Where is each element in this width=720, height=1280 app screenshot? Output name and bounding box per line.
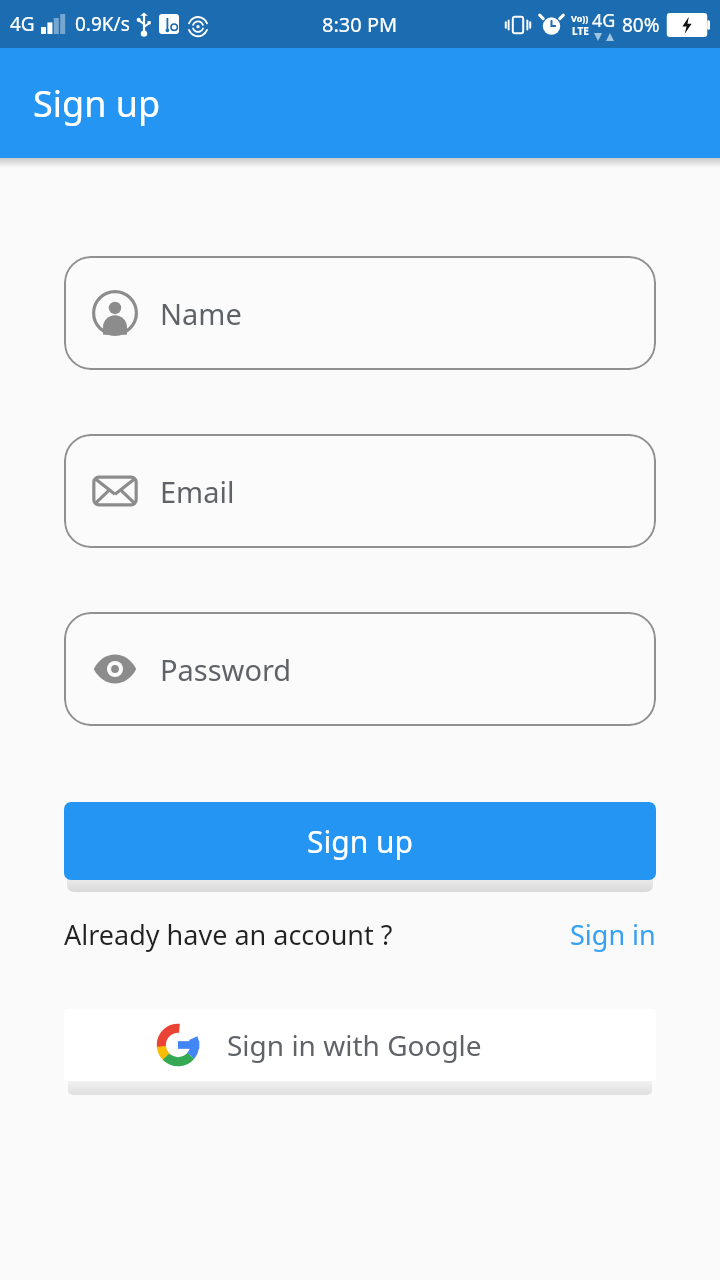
staticText: Sign in with Google: [227, 1026, 482, 1064]
button[interactable]: Sign up: [64, 802, 656, 880]
button[interactable]: Sign in: [570, 916, 656, 953]
staticText: 80%: [622, 12, 660, 38]
staticText: LTE: [572, 24, 589, 38]
staticText: Sign up: [307, 821, 413, 862]
staticText: Sign up: [33, 79, 161, 128]
staticText: 0.9K/s: [75, 11, 130, 37]
other: Show password: [92, 646, 138, 692]
staticText: 4G: [592, 8, 616, 33]
staticText: 8:30 PM: [322, 11, 398, 38]
staticText: Vo)): [571, 12, 589, 24]
staticText: Name: [160, 294, 242, 333]
button[interactable]: Name: [64, 256, 656, 370]
other: Name: [92, 290, 138, 336]
staticText: Email: [160, 472, 235, 511]
button[interactable]: Sign in with Google: [64, 1009, 656, 1081]
button[interactable]: Show password: [64, 612, 656, 726]
button[interactable]: Email: [64, 434, 656, 548]
staticText: Password: [160, 650, 292, 689]
staticText: Sign in: [570, 916, 656, 953]
staticText: 4G: [10, 11, 35, 37]
other: Email: [92, 468, 138, 514]
staticText: Already have an account ?: [64, 916, 393, 953]
